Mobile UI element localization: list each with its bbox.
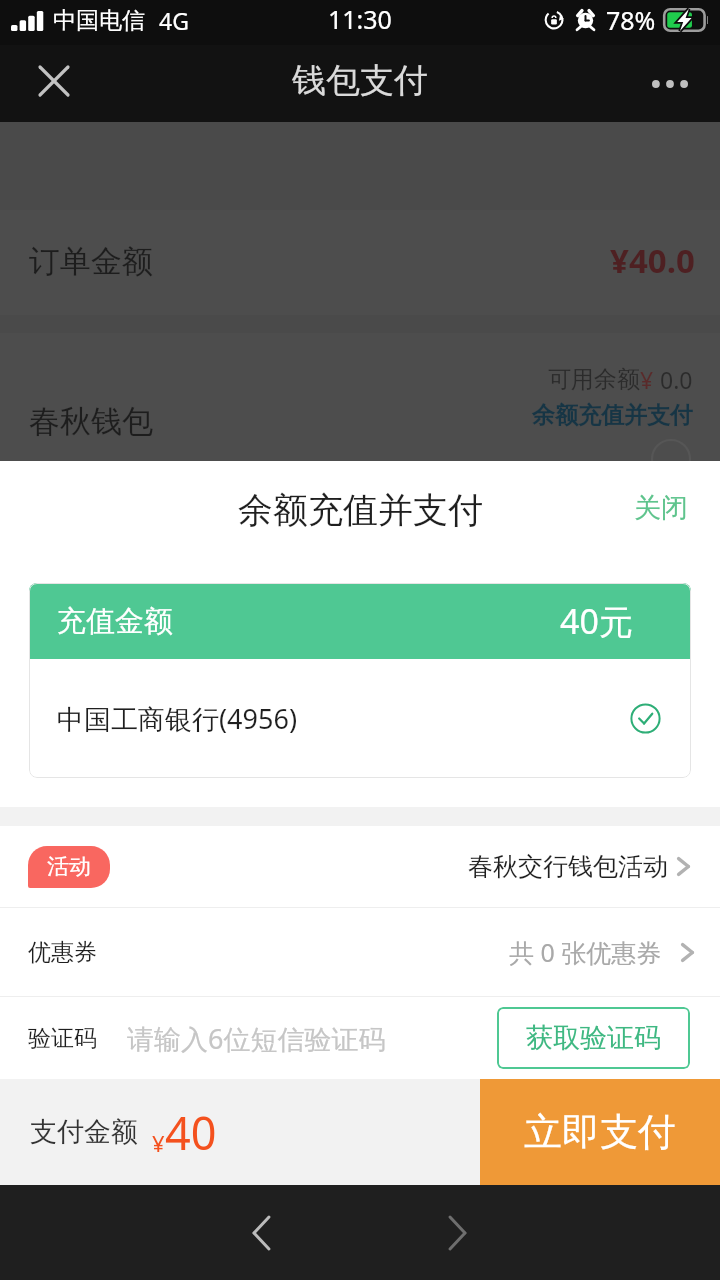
- button[interactable]: 关闭: [624, 483, 698, 533]
- staticText: ¥: [152, 1128, 165, 1158]
- button[interactable]: 立即支付: [480, 1079, 720, 1185]
- staticText: 余额充值并支付: [532, 401, 693, 430]
- staticText: 立即支付: [524, 1108, 676, 1156]
- staticText: 余额充值并支付: [238, 488, 483, 532]
- staticText: 验证码: [28, 1024, 97, 1053]
- button[interactable]: Close: [27, 57, 81, 111]
- staticText: 40: [165, 1102, 217, 1163]
- staticText: 0.0: [654, 364, 693, 395]
- button[interactable]: 获取验证码: [497, 1007, 690, 1069]
- staticText: 关闭: [634, 491, 688, 525]
- staticText: 4G: [159, 5, 189, 36]
- staticText: 78%: [606, 3, 656, 37]
- staticText: 中国工商银行(4956): [57, 700, 297, 737]
- button[interactable]: Back: [232, 1204, 290, 1262]
- button[interactable]: 中国工商银行(4956): [29, 659, 691, 778]
- staticText: 充值金额: [57, 603, 173, 640]
- staticText: 订单金额: [29, 242, 153, 281]
- button[interactable]: More options: [643, 57, 697, 111]
- staticText: 优惠券: [28, 938, 97, 967]
- staticText: 11:30: [328, 2, 392, 36]
- button[interactable]: 请输入6位短信验证码: [97, 997, 497, 1079]
- staticText: 共 0 张优惠券: [509, 935, 662, 969]
- staticText: 获取验证码: [526, 1021, 661, 1055]
- button[interactable]: 优惠券: [0, 908, 720, 996]
- staticText: 中国电信: [53, 6, 145, 35]
- staticText: 可用余额: [548, 365, 640, 394]
- button[interactable]: 余额充值并支付: [524, 393, 701, 438]
- staticText: ¥40.0: [610, 238, 695, 283]
- button[interactable]: 活动: [0, 826, 720, 907]
- staticText: 春秋钱包: [29, 402, 153, 441]
- staticText: 活动: [47, 853, 91, 881]
- staticText: ¥: [640, 364, 654, 395]
- staticText: 40元: [560, 598, 633, 644]
- staticText: 支付金额: [30, 1115, 138, 1149]
- button[interactable]: Forward: [428, 1204, 486, 1262]
- staticText: 钱包支付: [292, 59, 428, 102]
- staticText: 请输入6位短信验证码: [127, 1020, 386, 1057]
- staticText: 春秋交行钱包活动: [468, 851, 668, 882]
